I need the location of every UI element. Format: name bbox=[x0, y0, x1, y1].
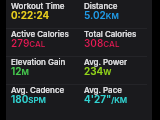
staticText: 234W bbox=[84, 65, 112, 77]
staticText: 0:22:24 bbox=[11, 9, 50, 21]
staticText: Avg. Pace bbox=[84, 85, 122, 95]
staticText: Elevation Gain bbox=[11, 57, 66, 67]
staticText: 180SPM bbox=[11, 93, 46, 105]
button[interactable]: Avg. Cadence bbox=[6, 84, 79, 112]
staticText: 4'27"/KM bbox=[84, 93, 128, 105]
button[interactable]: Total Calories bbox=[79, 28, 152, 56]
staticText: 279CAL bbox=[11, 37, 46, 49]
staticText: 12M bbox=[11, 65, 29, 77]
button[interactable]: Distance bbox=[79, 0, 152, 28]
button[interactable]: Elevation Gain bbox=[6, 56, 79, 84]
button[interactable]: Avg. Pace bbox=[79, 84, 152, 112]
staticText: Active Calories bbox=[11, 29, 69, 39]
staticText: Total Calories bbox=[84, 29, 137, 39]
staticText: Workout Time bbox=[11, 1, 65, 11]
staticText: 5.02KM bbox=[84, 9, 119, 21]
staticText: Avg. Power bbox=[84, 57, 128, 67]
button[interactable]: Active Calories bbox=[6, 28, 79, 56]
staticText: 308CAL bbox=[84, 37, 120, 49]
staticText: Avg. Cadence bbox=[11, 85, 65, 95]
button[interactable]: Avg. Power bbox=[79, 56, 152, 84]
button[interactable]: Workout Time bbox=[6, 0, 79, 28]
staticText: Distance bbox=[84, 1, 118, 11]
